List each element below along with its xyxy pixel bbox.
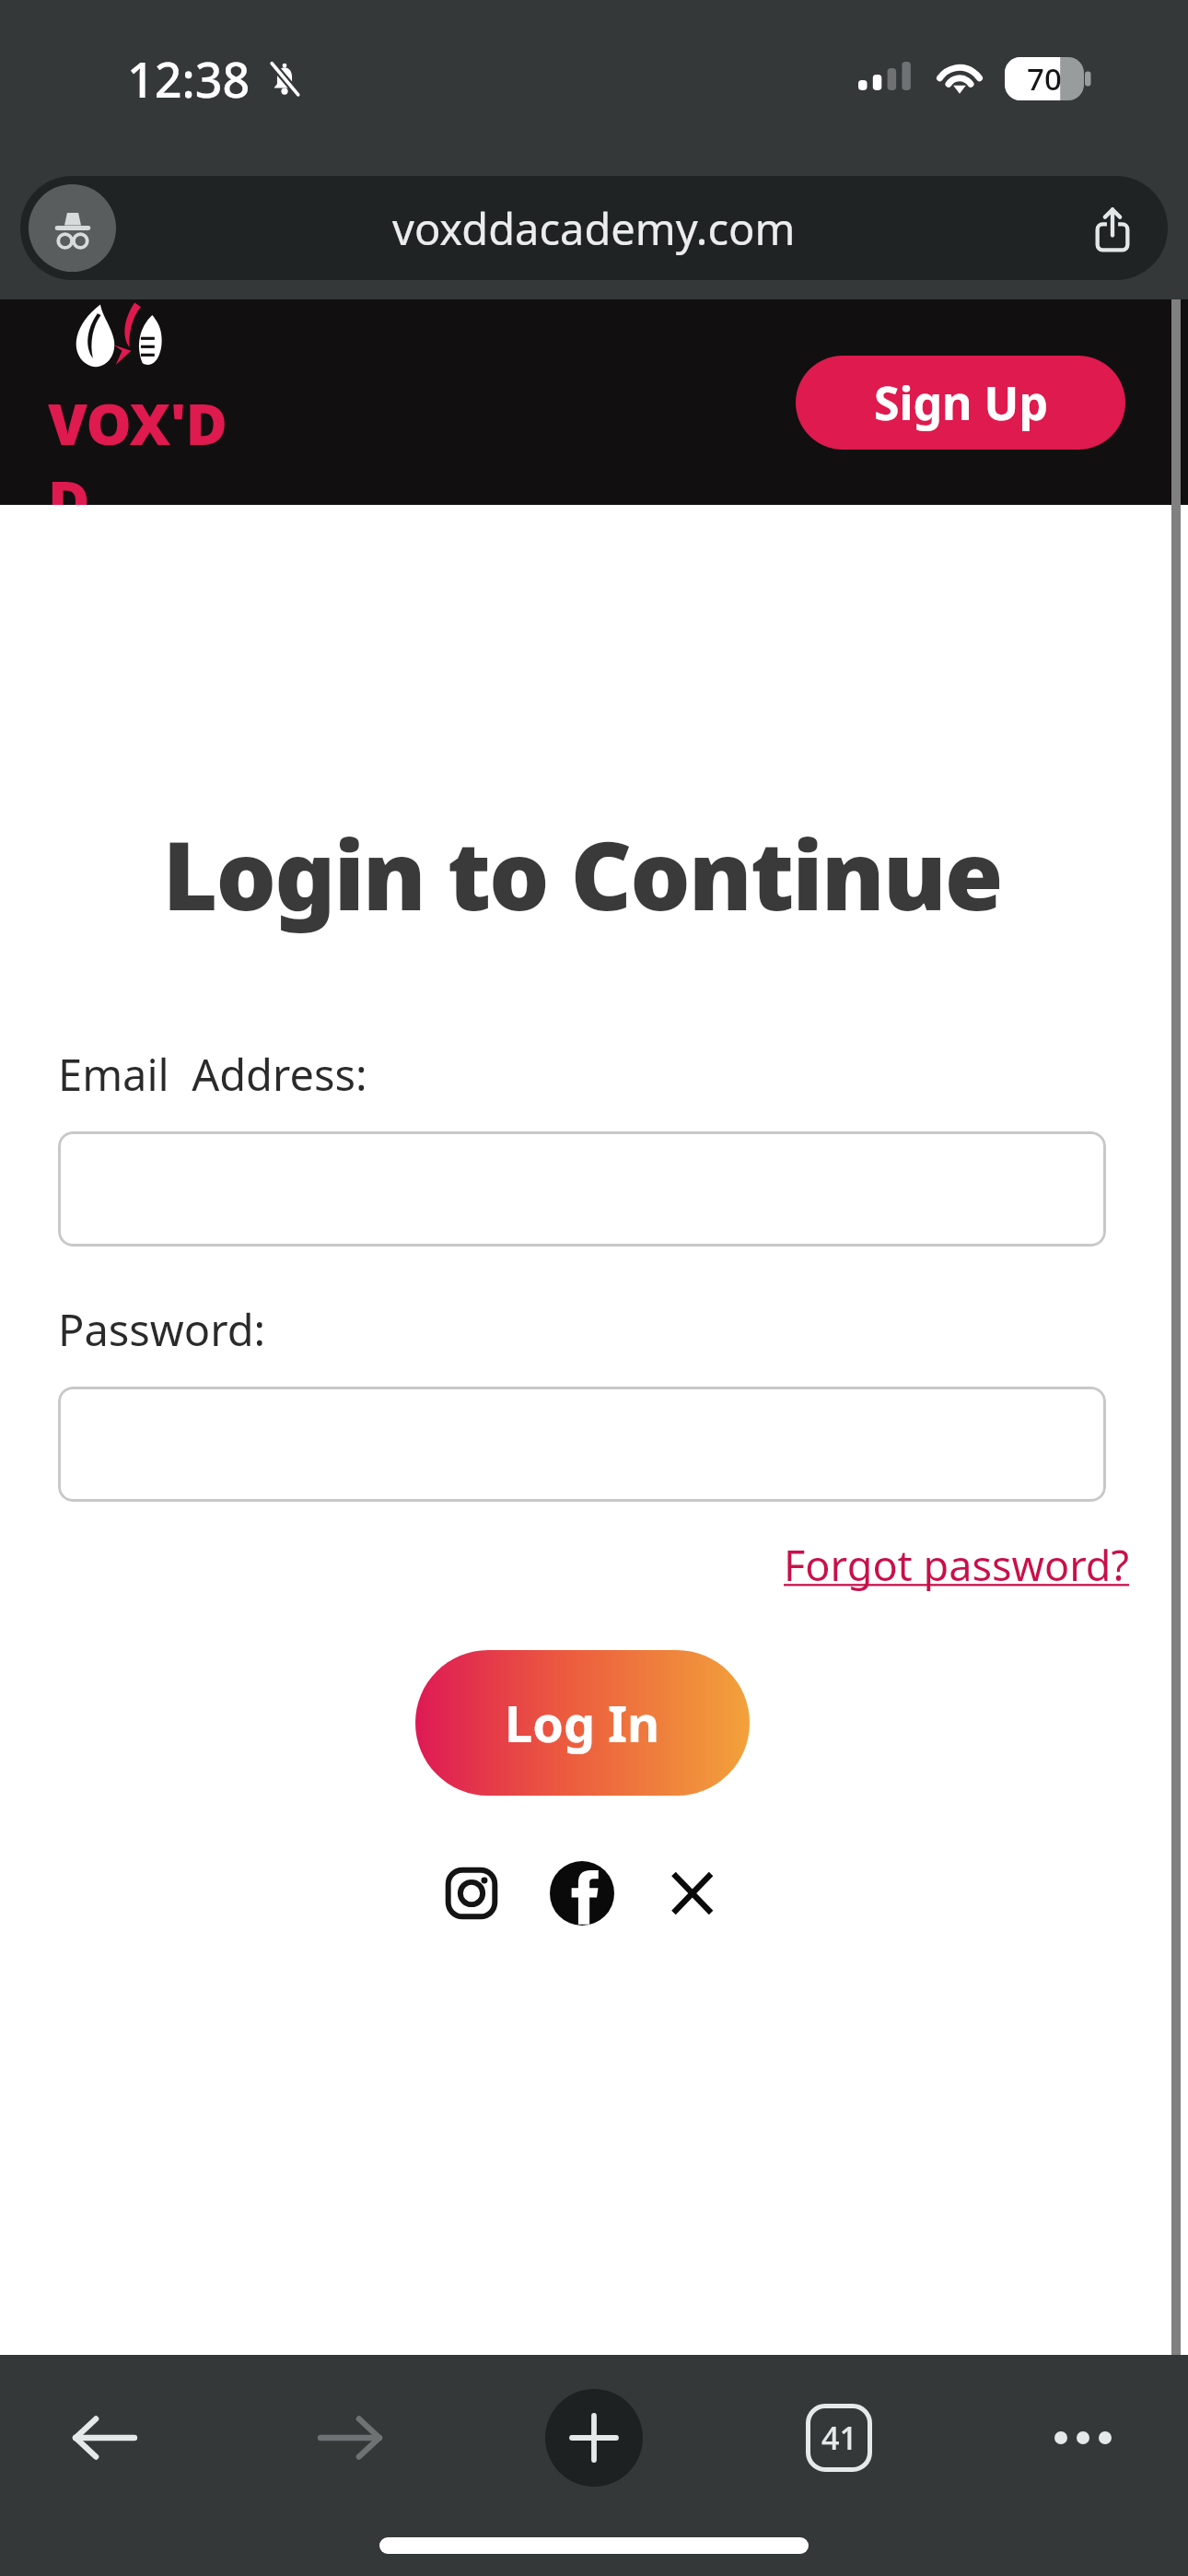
staticText: voxddacademy.com: [392, 199, 796, 258]
staticText: VOX'DD: [48, 384, 241, 505]
button[interactable]: [58, 1387, 1106, 1502]
button[interactable]: Forward: [298, 2386, 402, 2489]
button[interactable]: Instagram: [431, 1853, 512, 1934]
button[interactable]: Log In: [415, 1650, 750, 1796]
staticText: Login to Continue: [0, 809, 1164, 938]
button[interactable]: New tab: [542, 2386, 646, 2489]
button[interactable]: X (Twitter): [652, 1853, 733, 1934]
staticText: 41: [821, 2417, 857, 2459]
staticText: 12:38: [127, 46, 250, 111]
button[interactable]: Sign Up: [796, 356, 1125, 450]
staticText: Password:: [58, 1300, 266, 1359]
button[interactable]: Private browsing: [29, 184, 116, 272]
staticText: 70: [1027, 58, 1062, 100]
button[interactable]: Share: [1081, 197, 1144, 260]
button[interactable]: Tabs: [787, 2386, 891, 2489]
button[interactable]: [58, 1131, 1106, 1247]
button[interactable]: Private browsing: [20, 176, 1168, 280]
staticText: Sign Up: [874, 371, 1048, 434]
button[interactable]: More options: [1031, 2386, 1135, 2489]
staticText: Email Address:: [58, 1045, 367, 1104]
button[interactable]: Forgot password?: [784, 1537, 1130, 1593]
staticText: Log In: [505, 1689, 660, 1757]
button[interactable]: Facebook: [542, 1853, 623, 1934]
button[interactable]: Back: [53, 2386, 157, 2489]
